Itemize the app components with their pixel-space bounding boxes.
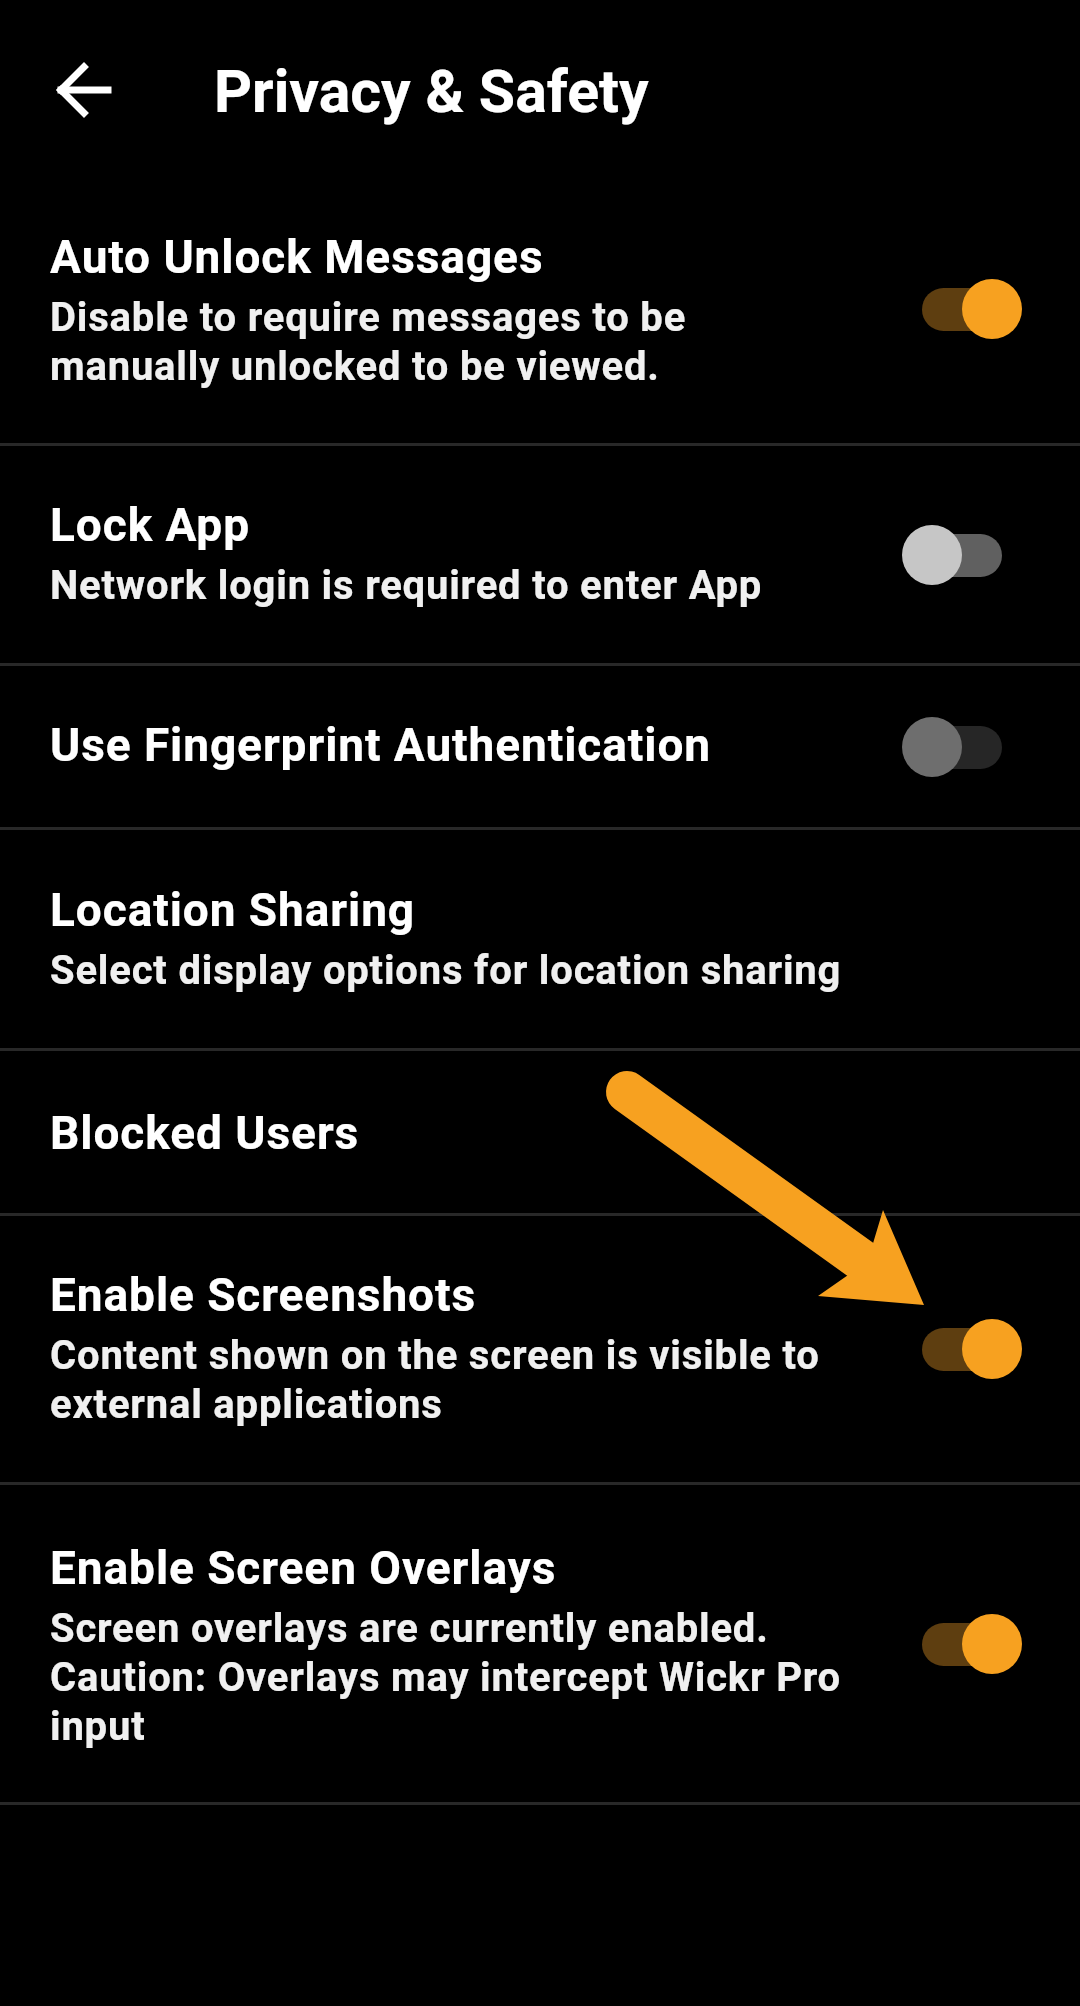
staticText: Network login is required to enter App xyxy=(50,562,763,609)
button[interactable]: Lock App xyxy=(0,446,1080,663)
button[interactable] xyxy=(58,64,110,116)
staticText: Screen overlays are currently enabled. C… xyxy=(50,1605,841,1750)
button[interactable]: Enable Screenshots xyxy=(0,1216,1080,1482)
staticText: Lock App xyxy=(50,498,251,552)
button[interactable] xyxy=(902,716,1022,778)
staticText: Content shown on the screen is visible t… xyxy=(50,1332,820,1428)
staticText: Blocked Users xyxy=(50,1106,360,1160)
staticText: Use Fingerprint Authentication xyxy=(50,718,711,772)
staticText: Auto Unlock Messages xyxy=(50,230,544,284)
staticText: Location Sharing xyxy=(50,883,416,937)
button[interactable]: Auto Unlock Messages xyxy=(0,174,1080,443)
staticText: Disable to require messages to be manual… xyxy=(50,294,687,390)
button[interactable]: Blocked Users xyxy=(0,1051,1080,1213)
button[interactable]: Enable Screen Overlays xyxy=(0,1485,1080,1802)
button[interactable] xyxy=(902,278,1022,340)
button[interactable] xyxy=(902,524,1022,586)
staticText: Enable Screenshots xyxy=(50,1268,477,1322)
button[interactable] xyxy=(902,1613,1022,1675)
staticText: Enable Screen Overlays xyxy=(50,1541,557,1595)
button[interactable]: Location Sharing xyxy=(0,830,1080,1048)
staticText: Select display options for location shar… xyxy=(50,947,842,994)
button[interactable] xyxy=(902,1318,1022,1380)
staticText: Privacy & Safety xyxy=(214,57,649,126)
button[interactable]: Use Fingerprint Authentication xyxy=(0,666,1080,827)
